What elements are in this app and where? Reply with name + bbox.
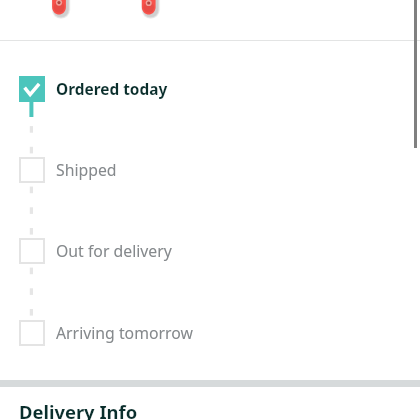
button[interactable]: Ordered today (0, 66, 420, 112)
staticText: Out for delivery (56, 240, 172, 262)
staticText: Arriving tomorrow (56, 322, 193, 344)
staticText: Ordered today (56, 79, 168, 100)
staticText: Delivery Info (19, 399, 138, 420)
staticText: Shipped (56, 159, 117, 181)
button[interactable]: Out for delivery (0, 228, 420, 274)
button[interactable]: Open delivery map (0, 0, 420, 40)
button[interactable]: Shipped (0, 147, 420, 193)
button[interactable]: Arriving tomorrow (0, 310, 420, 356)
